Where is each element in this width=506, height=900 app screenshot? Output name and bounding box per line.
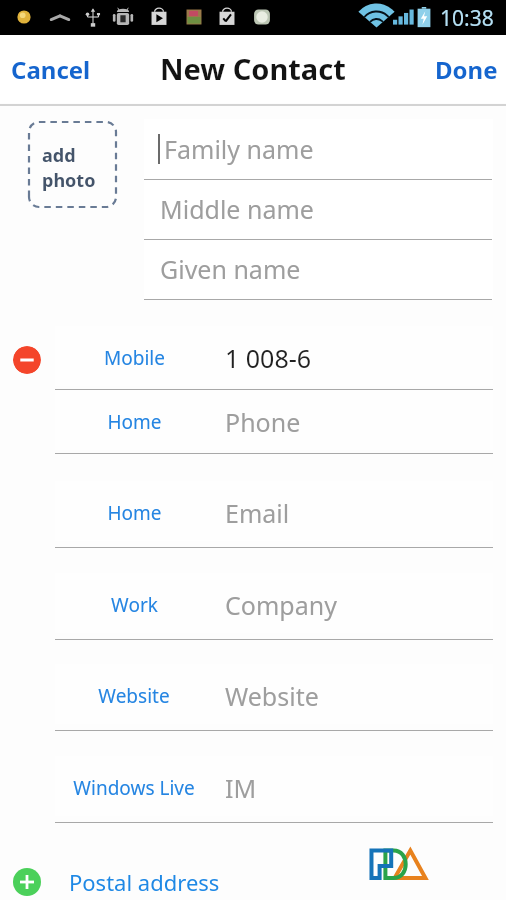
button[interactable]: Home [0,485,506,541]
button[interactable]: Cancel [0,39,107,100]
button[interactable]: Work [0,577,506,633]
staticText: Home [107,500,162,526]
staticText: Work [111,592,158,618]
staticText: Phone [225,405,301,439]
staticText: Website [225,679,319,713]
staticText: Windows Live [73,775,195,801]
staticText: add [42,143,76,168]
staticText: New Contact [160,49,346,88]
staticText: Website [98,683,170,709]
button[interactable]: Given name [144,239,492,299]
staticText: Middle name [160,192,314,226]
staticText: Cancel [11,53,91,86]
button[interactable]: Home [0,394,506,450]
button[interactable]: Add photo [29,122,116,207]
staticText: Email [225,496,290,530]
button[interactable]: Family name [144,119,492,179]
button[interactable]: Middle name [144,179,492,239]
button[interactable]: Done [419,39,506,100]
staticText: Done [435,53,498,86]
button[interactable]: Windows Live [0,760,506,816]
staticText: IM [225,771,257,805]
button[interactable]: Mobile [0,330,506,386]
staticText: Given name [160,252,301,286]
staticText: Company [225,588,337,622]
staticText: 1 008-6 [225,341,312,375]
button[interactable]: Website [0,668,506,724]
staticText: 10:38 [440,4,494,33]
staticText: photo [42,168,96,193]
button[interactable]: Postal address [0,858,506,900]
staticText: Family name [164,132,314,166]
button[interactable]: Remove Mobile number [13,346,41,374]
staticText: Postal address [69,867,220,897]
staticText: Mobile [104,345,165,371]
staticText: Home [107,409,162,435]
